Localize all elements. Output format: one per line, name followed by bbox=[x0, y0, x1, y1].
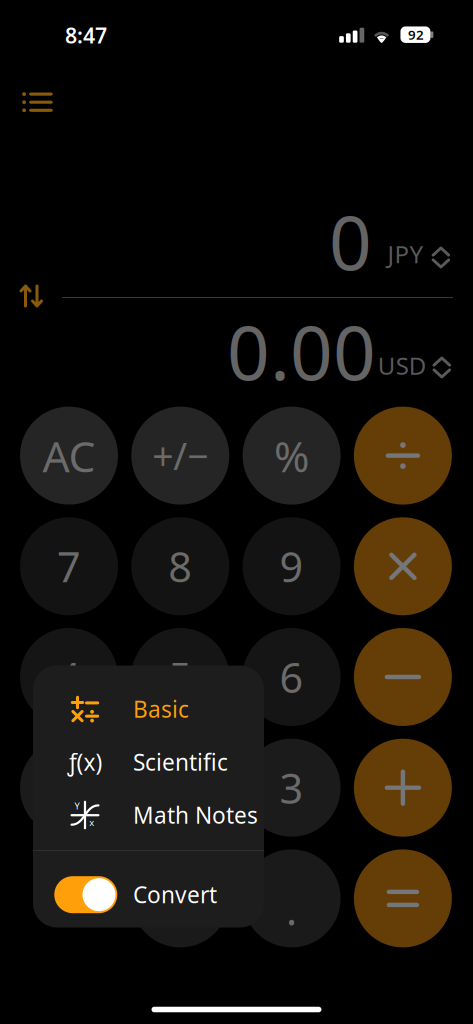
staticText: Y bbox=[74, 800, 79, 812]
staticText: Scientific bbox=[133, 747, 228, 777]
staticText: % bbox=[274, 427, 309, 484]
button[interactable]: US dollar amount bbox=[150, 308, 450, 394]
staticText: 4 bbox=[57, 650, 81, 704]
button[interactable]: 9 bbox=[243, 517, 341, 615]
button[interactable]: 0 bbox=[131, 849, 229, 947]
button[interactable]: 4 bbox=[20, 628, 118, 726]
staticText: x bbox=[89, 816, 94, 829]
staticText: JPY bbox=[387, 238, 423, 270]
staticText: +/− bbox=[152, 431, 208, 480]
button[interactable]: Minus bbox=[354, 628, 452, 726]
button[interactable]: Convert bbox=[33, 863, 264, 925]
staticText: 7 bbox=[57, 539, 81, 594]
staticText: 2 bbox=[168, 760, 192, 815]
button[interactable]: % bbox=[243, 407, 341, 505]
button[interactable]: 7 bbox=[20, 517, 118, 615]
staticText: 9 bbox=[280, 539, 304, 594]
button[interactable]: 5 bbox=[131, 628, 229, 726]
staticText: 0.00 bbox=[227, 301, 376, 401]
button[interactable]: Y bbox=[33, 788, 264, 841]
staticText: ƒ(x) bbox=[67, 747, 102, 777]
button[interactable]: +/− bbox=[131, 407, 229, 505]
staticText: Convert bbox=[133, 879, 217, 909]
staticText: 0 bbox=[329, 191, 372, 291]
button[interactable]: 3 bbox=[243, 739, 341, 837]
staticText: Math Notes bbox=[133, 800, 258, 830]
staticText: 8:47 bbox=[65, 21, 107, 49]
staticText: 92 bbox=[408, 26, 424, 43]
staticText: 0 bbox=[168, 871, 192, 926]
staticText: USD bbox=[378, 350, 427, 381]
staticText: 8 bbox=[168, 539, 192, 594]
button[interactable]: . bbox=[243, 849, 341, 947]
staticText: AC bbox=[42, 427, 95, 484]
button[interactable]: Japanese yen amount bbox=[150, 198, 450, 284]
button[interactable]: Calculator history bbox=[23, 93, 52, 112]
button[interactable]: 2 bbox=[131, 739, 229, 837]
button[interactable]: Basic bbox=[33, 682, 264, 735]
button[interactable]: Equals bbox=[354, 849, 452, 947]
button[interactable]: AC bbox=[20, 407, 118, 505]
staticText: 6 bbox=[280, 650, 304, 704]
staticText: 5 bbox=[168, 650, 192, 704]
button[interactable]: 8 bbox=[131, 517, 229, 615]
button[interactable]: Divide bbox=[354, 407, 452, 505]
staticText: Basic bbox=[133, 694, 189, 724]
staticText: 1 bbox=[57, 760, 81, 815]
button[interactable]: ƒ(x) bbox=[33, 735, 264, 788]
staticText: . bbox=[286, 882, 297, 937]
button[interactable]: Multiply bbox=[354, 517, 452, 615]
button[interactable]: Swap currencies bbox=[20, 284, 48, 310]
staticText: 3 bbox=[280, 760, 304, 815]
button[interactable]: 6 bbox=[243, 628, 341, 726]
button[interactable]: Plus bbox=[354, 739, 452, 837]
button[interactable]: 1 bbox=[20, 739, 118, 837]
